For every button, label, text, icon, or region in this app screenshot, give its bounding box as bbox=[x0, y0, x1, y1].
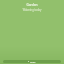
staticText: Start bbox=[30, 60, 36, 63]
staticText: Watering today bbox=[2, 8, 62, 12]
button[interactable]: Start watering bbox=[3, 60, 61, 63]
staticText: Garden bbox=[26, 3, 38, 7]
button[interactable]: Garden bbox=[2, 3, 62, 7]
